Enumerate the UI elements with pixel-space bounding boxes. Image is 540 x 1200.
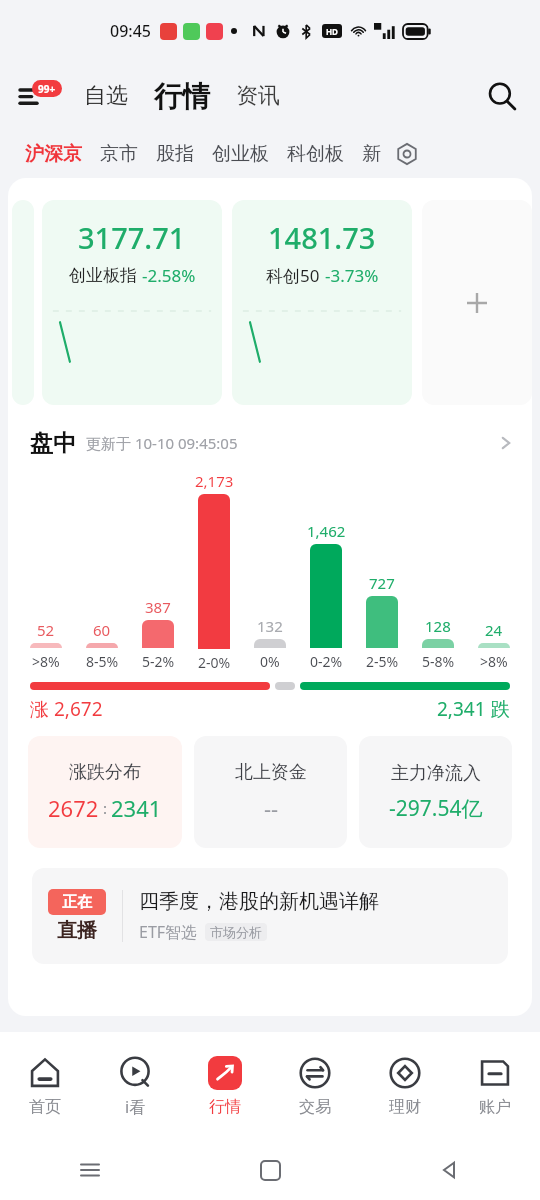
button[interactable]: i看 [90, 1032, 180, 1140]
staticText: 1481.73 [268, 218, 376, 257]
button[interactable]: 3177.71 [42, 200, 222, 405]
button[interactable]: 科创板 [278, 136, 353, 172]
staticText: 1,462 [307, 521, 346, 541]
staticText: 727 [369, 573, 395, 593]
staticText: -- [264, 793, 279, 823]
staticText: 2,341 跌 [437, 696, 510, 722]
button[interactable]: 创业板 [203, 136, 278, 172]
staticText: 沪深京 [25, 142, 82, 166]
staticText: 行情 [209, 1097, 241, 1117]
staticText: 四季度，港股的新机遇详解 [139, 889, 379, 914]
staticText: 正在 [62, 893, 92, 912]
staticText: 0-2% [310, 652, 343, 671]
staticText: 2,173 [195, 471, 234, 491]
staticText: 99+ [38, 82, 56, 96]
staticText: ETF智选 [139, 921, 198, 943]
staticText: >8% [32, 652, 60, 671]
staticText: 直播 [57, 918, 97, 943]
staticText: 09:45 [110, 20, 151, 42]
staticText: 新 [362, 142, 381, 166]
staticText: 更新于 10-10 09:45:05 [86, 433, 238, 453]
staticText: : [99, 798, 111, 818]
staticText: 股指 [156, 142, 194, 166]
staticText: -2.58% [142, 264, 196, 287]
staticText: 0% [260, 652, 280, 671]
staticText: i看 [125, 1096, 146, 1118]
staticText: 市场分析 [210, 924, 262, 940]
staticText: 涨跌分布 [69, 761, 141, 784]
staticText: HD [326, 26, 338, 37]
staticText: 理财 [389, 1097, 421, 1117]
staticText: 128 [425, 616, 451, 636]
staticText: 5-2% [142, 652, 175, 671]
staticText: 资讯 [236, 82, 280, 110]
button[interactable]: 新 [353, 136, 390, 172]
staticText: 52 [37, 620, 55, 640]
button[interactable]: 北上资金 [194, 736, 347, 848]
staticText: 主力净流入 [391, 762, 481, 785]
staticText: -3.73% [325, 264, 379, 287]
button[interactable]: 涨跌分布 [28, 736, 182, 848]
button[interactable]: Recent apps [70, 1150, 110, 1190]
button[interactable]: 行情 [180, 1032, 270, 1140]
staticText: 3177.71 [78, 218, 186, 257]
staticText: 京市 [100, 142, 138, 166]
button[interactable]: 资讯 [234, 82, 282, 110]
staticText: 账户 [479, 1097, 511, 1117]
button[interactable]: Add index [422, 200, 532, 405]
staticText: 132 [257, 616, 283, 636]
staticText: 创业板指 [69, 265, 137, 286]
staticText: 盘中 [30, 429, 76, 458]
button[interactable]: 1481.73 [232, 200, 412, 405]
staticText: >8% [480, 652, 508, 671]
button[interactable]: 京市 [91, 136, 147, 172]
button[interactable]: Customize tabs [390, 137, 424, 171]
button[interactable]: 理财 [360, 1032, 450, 1140]
button[interactable]: 首页 [0, 1032, 90, 1140]
staticText: 387 [145, 597, 171, 617]
staticText: 行情 [154, 79, 210, 114]
staticText: 北上资金 [235, 761, 307, 784]
staticText: 科创板 [287, 142, 344, 166]
staticText: 5-8% [422, 652, 455, 671]
button[interactable]: Menu [18, 81, 56, 111]
staticText: 8-5% [86, 652, 119, 671]
staticText: 24 [485, 620, 503, 640]
button[interactable]: Search [482, 76, 522, 116]
button[interactable]: 行情 [152, 79, 212, 114]
button[interactable]: 账户 [450, 1032, 540, 1140]
staticText: 创业板 [212, 142, 269, 166]
button[interactable]: Home [250, 1150, 290, 1190]
staticText: 2672 [48, 793, 99, 823]
button[interactable]: 沪深京 [16, 136, 91, 172]
staticText: 2-0% [198, 653, 231, 671]
button[interactable]: 股指 [147, 136, 203, 172]
staticText: 首页 [29, 1097, 61, 1117]
button[interactable]: 主力净流入 [359, 736, 512, 848]
button[interactable]: Back [430, 1150, 470, 1190]
staticText: 60 [93, 620, 111, 640]
button[interactable]: 自选 [82, 82, 130, 110]
staticText: 科创50 [266, 264, 320, 287]
button[interactable]: 正在 [32, 868, 508, 964]
staticText: 2341 [111, 793, 162, 823]
button[interactable]: 交易 [270, 1032, 360, 1140]
staticText: 2-5% [366, 652, 399, 671]
staticText: 涨 2,672 [30, 696, 103, 722]
staticText: 交易 [299, 1097, 331, 1117]
button[interactable]: 盘中 [30, 423, 516, 463]
staticText: 自选 [84, 82, 128, 110]
staticText: -297.54亿 [389, 794, 483, 823]
